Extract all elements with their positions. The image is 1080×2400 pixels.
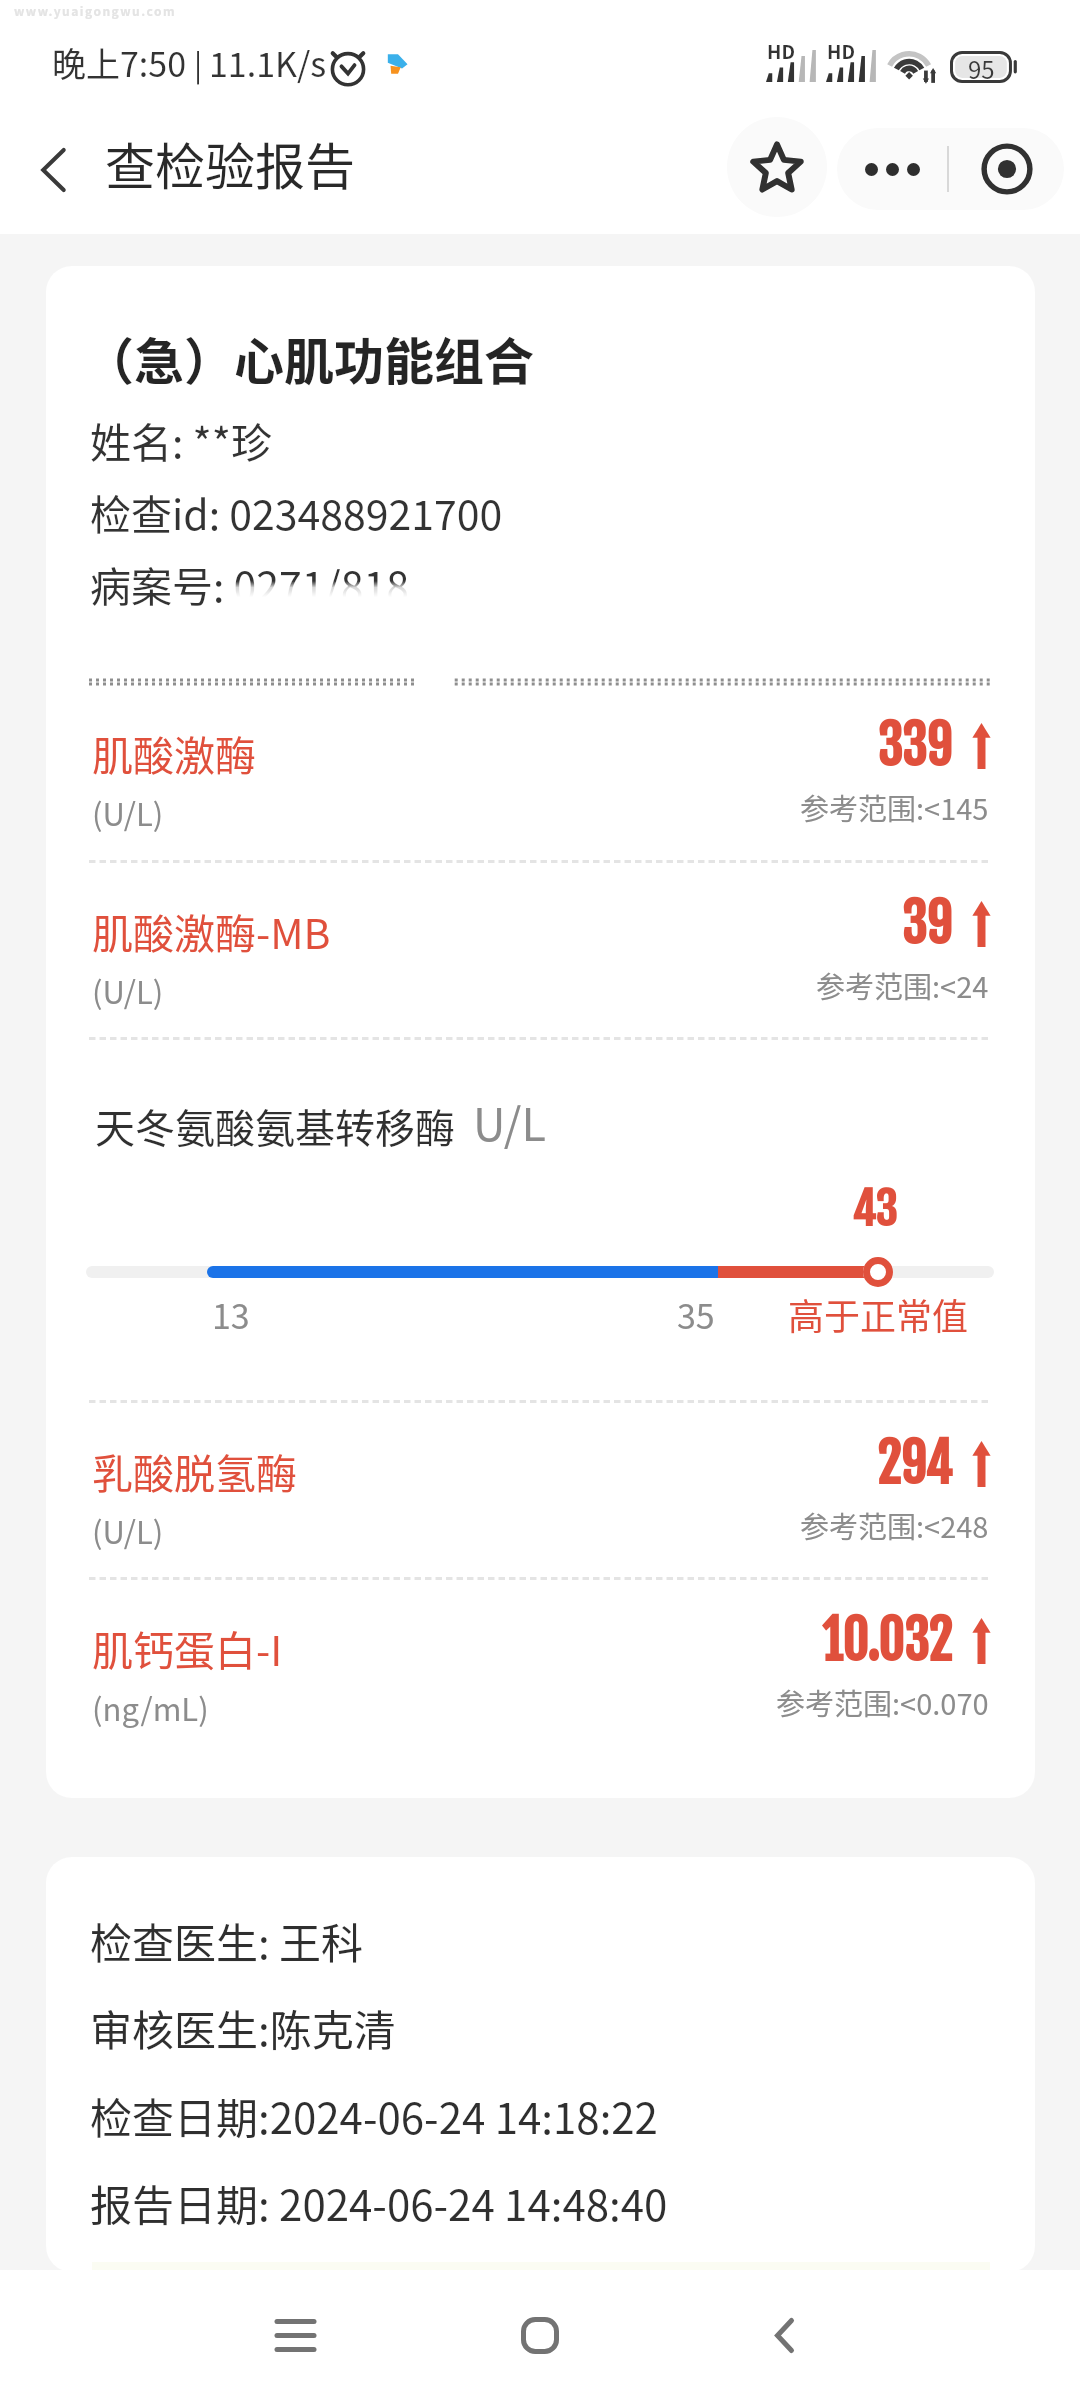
- staticText: (U/L): [92, 790, 164, 835]
- button[interactable]: Back: [684, 2270, 884, 2400]
- staticText: (U/L): [92, 968, 164, 1013]
- button[interactable]: 肌酸激酶: [46, 682, 1035, 861]
- staticText: 姓名: **珍: [90, 410, 272, 469]
- staticText: 11.1K/s: [209, 38, 327, 87]
- button[interactable]: 肌酸激酶-MB: [46, 861, 1035, 1038]
- staticText: 参考范围:<0.070: [776, 1681, 989, 1723]
- staticText: 294: [877, 1430, 952, 1498]
- staticText: 检查日期:2024-06-24 14:18:22: [90, 2085, 658, 2146]
- staticText: (ng/mL): [92, 1685, 209, 1730]
- staticText: 病案号: 0271/818: [90, 554, 409, 613]
- staticText: 肌酸激酶-MB: [92, 901, 331, 960]
- staticText: 检查医生: 王科: [90, 1910, 364, 1971]
- staticText: 339: [878, 712, 952, 780]
- staticText: 43: [852, 1182, 897, 1237]
- button[interactable]: Favorite: [727, 117, 827, 217]
- staticText: 肌酸激酶: [92, 723, 256, 782]
- staticText: 35: [677, 1290, 715, 1339]
- button[interactable]: More options: [837, 128, 947, 210]
- button[interactable]: Recent apps: [195, 2270, 395, 2400]
- staticText: 查检验报告: [105, 127, 355, 199]
- staticText: (U/L): [92, 1508, 164, 1553]
- staticText: 参考范围:<248: [800, 1504, 989, 1546]
- staticText: 乳酸脱氢酶: [92, 1441, 297, 1500]
- staticText: 检查id: 023488921700: [90, 482, 503, 541]
- staticText: 审核医生:陈克清: [90, 1997, 396, 2058]
- staticText: 参考范围:<24: [816, 964, 989, 1006]
- staticText: 肌钙蛋白-I: [92, 1618, 283, 1677]
- button[interactable]: 肌钙蛋白-I: [46, 1578, 1035, 1755]
- staticText: 高于正常值: [788, 1288, 969, 1340]
- staticText: HD: [827, 37, 855, 65]
- button[interactable]: 乳酸脱氢酶: [46, 1401, 1035, 1578]
- button[interactable]: Close: [949, 128, 1064, 210]
- staticText: www.yuaigongwu.com: [14, 2, 176, 19]
- staticText: 95: [968, 51, 995, 83]
- button[interactable]: Home: [440, 2270, 640, 2400]
- staticText: 10.032: [822, 1607, 952, 1675]
- staticText: 天冬氨酸氨基转移酶: [95, 1097, 455, 1155]
- staticText: |: [194, 41, 203, 84]
- staticText: 报告日期: 2024-06-24 14:48:40: [90, 2172, 668, 2233]
- button[interactable]: 天冬氨酸氨基转移酶: [46, 1038, 1035, 1401]
- staticText: U/L: [473, 1089, 546, 1154]
- staticText: 13: [212, 1290, 250, 1339]
- staticText: HD: [767, 37, 795, 65]
- staticText: 39: [902, 890, 952, 958]
- staticText: （急）心肌功能组合: [84, 322, 534, 394]
- button[interactable]: Back: [0, 115, 108, 225]
- staticText: 参考范围:<145: [800, 786, 989, 828]
- staticText: 晚上7:50: [52, 38, 187, 87]
